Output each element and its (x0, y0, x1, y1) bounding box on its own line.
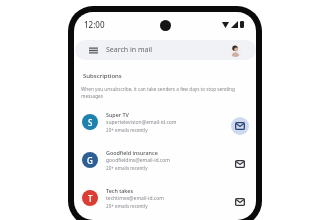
button[interactable]: Account (229, 44, 242, 57)
button[interactable]: Unsubscribe (231, 193, 249, 211)
staticText: T (88, 193, 93, 204)
staticText: techtimes@email-id.com (106, 195, 164, 202)
staticText: Subscriptions (83, 72, 122, 80)
staticText: Super TV (106, 111, 129, 118)
staticText: 20+ emails recently (106, 165, 148, 171)
staticText: goodfieldins@email-id.com (106, 157, 170, 164)
button[interactable]: Unsubscribe (231, 155, 249, 173)
staticText: supertelevision@email-id.com (106, 119, 177, 126)
button[interactable]: G (74, 144, 256, 176)
staticText: When you unsubscribe, it can take sender… (81, 86, 243, 100)
staticText: Goodfield insurance (106, 149, 158, 156)
button[interactable]: T (74, 182, 256, 214)
button[interactable]: S (74, 106, 256, 138)
staticText: G (87, 155, 93, 166)
other: Menu (89, 47, 98, 54)
staticText: 20+ emails recently (106, 203, 148, 209)
staticText: S (88, 117, 93, 128)
staticText: 12:00 (84, 19, 105, 30)
button[interactable]: Unsubscribe (231, 117, 249, 135)
button[interactable]: Menu (75, 40, 256, 60)
staticText: Tech takes (106, 187, 134, 194)
staticText: Search in mail (106, 45, 153, 55)
staticText: 20+ emails recently (106, 127, 148, 133)
